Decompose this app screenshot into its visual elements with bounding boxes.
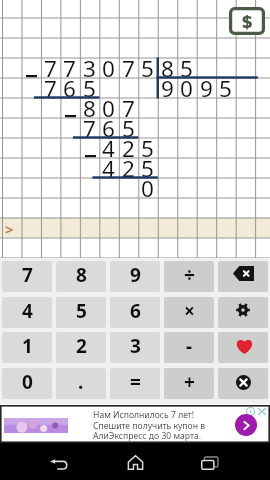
- button[interactable]: .: [56, 368, 106, 399]
- staticText: >: [5, 219, 14, 239]
- staticText: 1: [22, 333, 33, 359]
- staticText: 0: [177, 73, 196, 104]
- button[interactable]: Back: [45, 450, 70, 475]
- button[interactable]: 1: [2, 332, 52, 363]
- staticText: 6: [60, 73, 79, 104]
- staticText: 4: [22, 298, 33, 324]
- staticText: -: [186, 333, 193, 359]
- button[interactable]: Favorites: [218, 332, 268, 363]
- button[interactable]: 8: [56, 261, 106, 292]
- staticText: 8: [76, 262, 87, 288]
- staticText: +: [184, 369, 195, 395]
- staticText: 8: [80, 93, 99, 124]
- staticText: 9: [158, 73, 177, 104]
- staticText: 7: [60, 53, 79, 84]
- staticText: 2: [76, 333, 87, 359]
- button[interactable]: Settings: [218, 297, 268, 328]
- button[interactable]: 7: [2, 261, 52, 292]
- button[interactable]: ÷: [164, 261, 214, 292]
- button[interactable]: Open advertisement: [235, 414, 257, 436]
- staticText: 8: [158, 53, 177, 84]
- staticText: .: [78, 369, 84, 395]
- staticText: 6: [99, 113, 118, 144]
- staticText: 5: [76, 298, 87, 324]
- staticText: ×: [184, 298, 195, 324]
- staticText: 7: [80, 113, 99, 144]
- button[interactable]: Recent apps: [197, 450, 222, 475]
- staticText: 4: [99, 153, 118, 184]
- staticText: 7: [41, 73, 60, 104]
- staticText: 7: [119, 53, 138, 84]
- button[interactable]: 5: [56, 297, 106, 328]
- staticText: АлиЭкспресс до 30 марта.: [93, 430, 202, 442]
- button[interactable]: 3: [110, 332, 160, 363]
- staticText: 9: [130, 262, 141, 288]
- staticText: 0: [99, 93, 118, 124]
- button[interactable]: 9: [110, 261, 160, 292]
- staticText: Спешите получить купон в: [93, 420, 205, 432]
- staticText: 6: [130, 298, 141, 324]
- staticText: 0: [99, 53, 118, 84]
- staticText: =: [130, 369, 141, 395]
- button[interactable]: 0: [2, 368, 52, 399]
- staticText: 7: [41, 53, 60, 84]
- staticText: 3: [130, 333, 141, 359]
- staticText: 4: [99, 133, 118, 164]
- button[interactable]: 4: [2, 297, 52, 328]
- button[interactable]: Purchase: [229, 7, 265, 35]
- staticText: 5: [119, 113, 138, 144]
- staticText: 7: [22, 262, 33, 288]
- staticText: 7: [119, 93, 138, 124]
- staticText: 5: [80, 73, 99, 104]
- button[interactable]: 2: [56, 332, 106, 363]
- button[interactable]: ×: [164, 297, 214, 328]
- button[interactable]: -: [164, 332, 214, 363]
- staticText: 5: [138, 53, 157, 84]
- staticText: 0: [138, 173, 157, 204]
- button[interactable]: Home: [123, 450, 148, 475]
- staticText: $: [242, 9, 253, 34]
- staticText: ÷: [184, 262, 195, 288]
- button[interactable]: +: [164, 368, 214, 399]
- button[interactable]: Backspace: [218, 261, 268, 292]
- button[interactable]: 6: [110, 297, 160, 328]
- staticText: 0: [22, 369, 33, 395]
- staticText: 2: [119, 133, 138, 164]
- button[interactable]: =: [110, 368, 160, 399]
- button[interactable]: Clear all: [218, 368, 268, 399]
- staticText: 3: [80, 53, 99, 84]
- staticText: 5: [138, 153, 157, 184]
- staticText: Нам Исполнилось 7 лет!: [93, 409, 195, 421]
- staticText: 5: [138, 133, 157, 164]
- staticText: 5: [177, 53, 196, 84]
- staticText: 5: [216, 73, 235, 104]
- staticText: 2: [119, 153, 138, 184]
- staticText: 9: [197, 73, 216, 104]
